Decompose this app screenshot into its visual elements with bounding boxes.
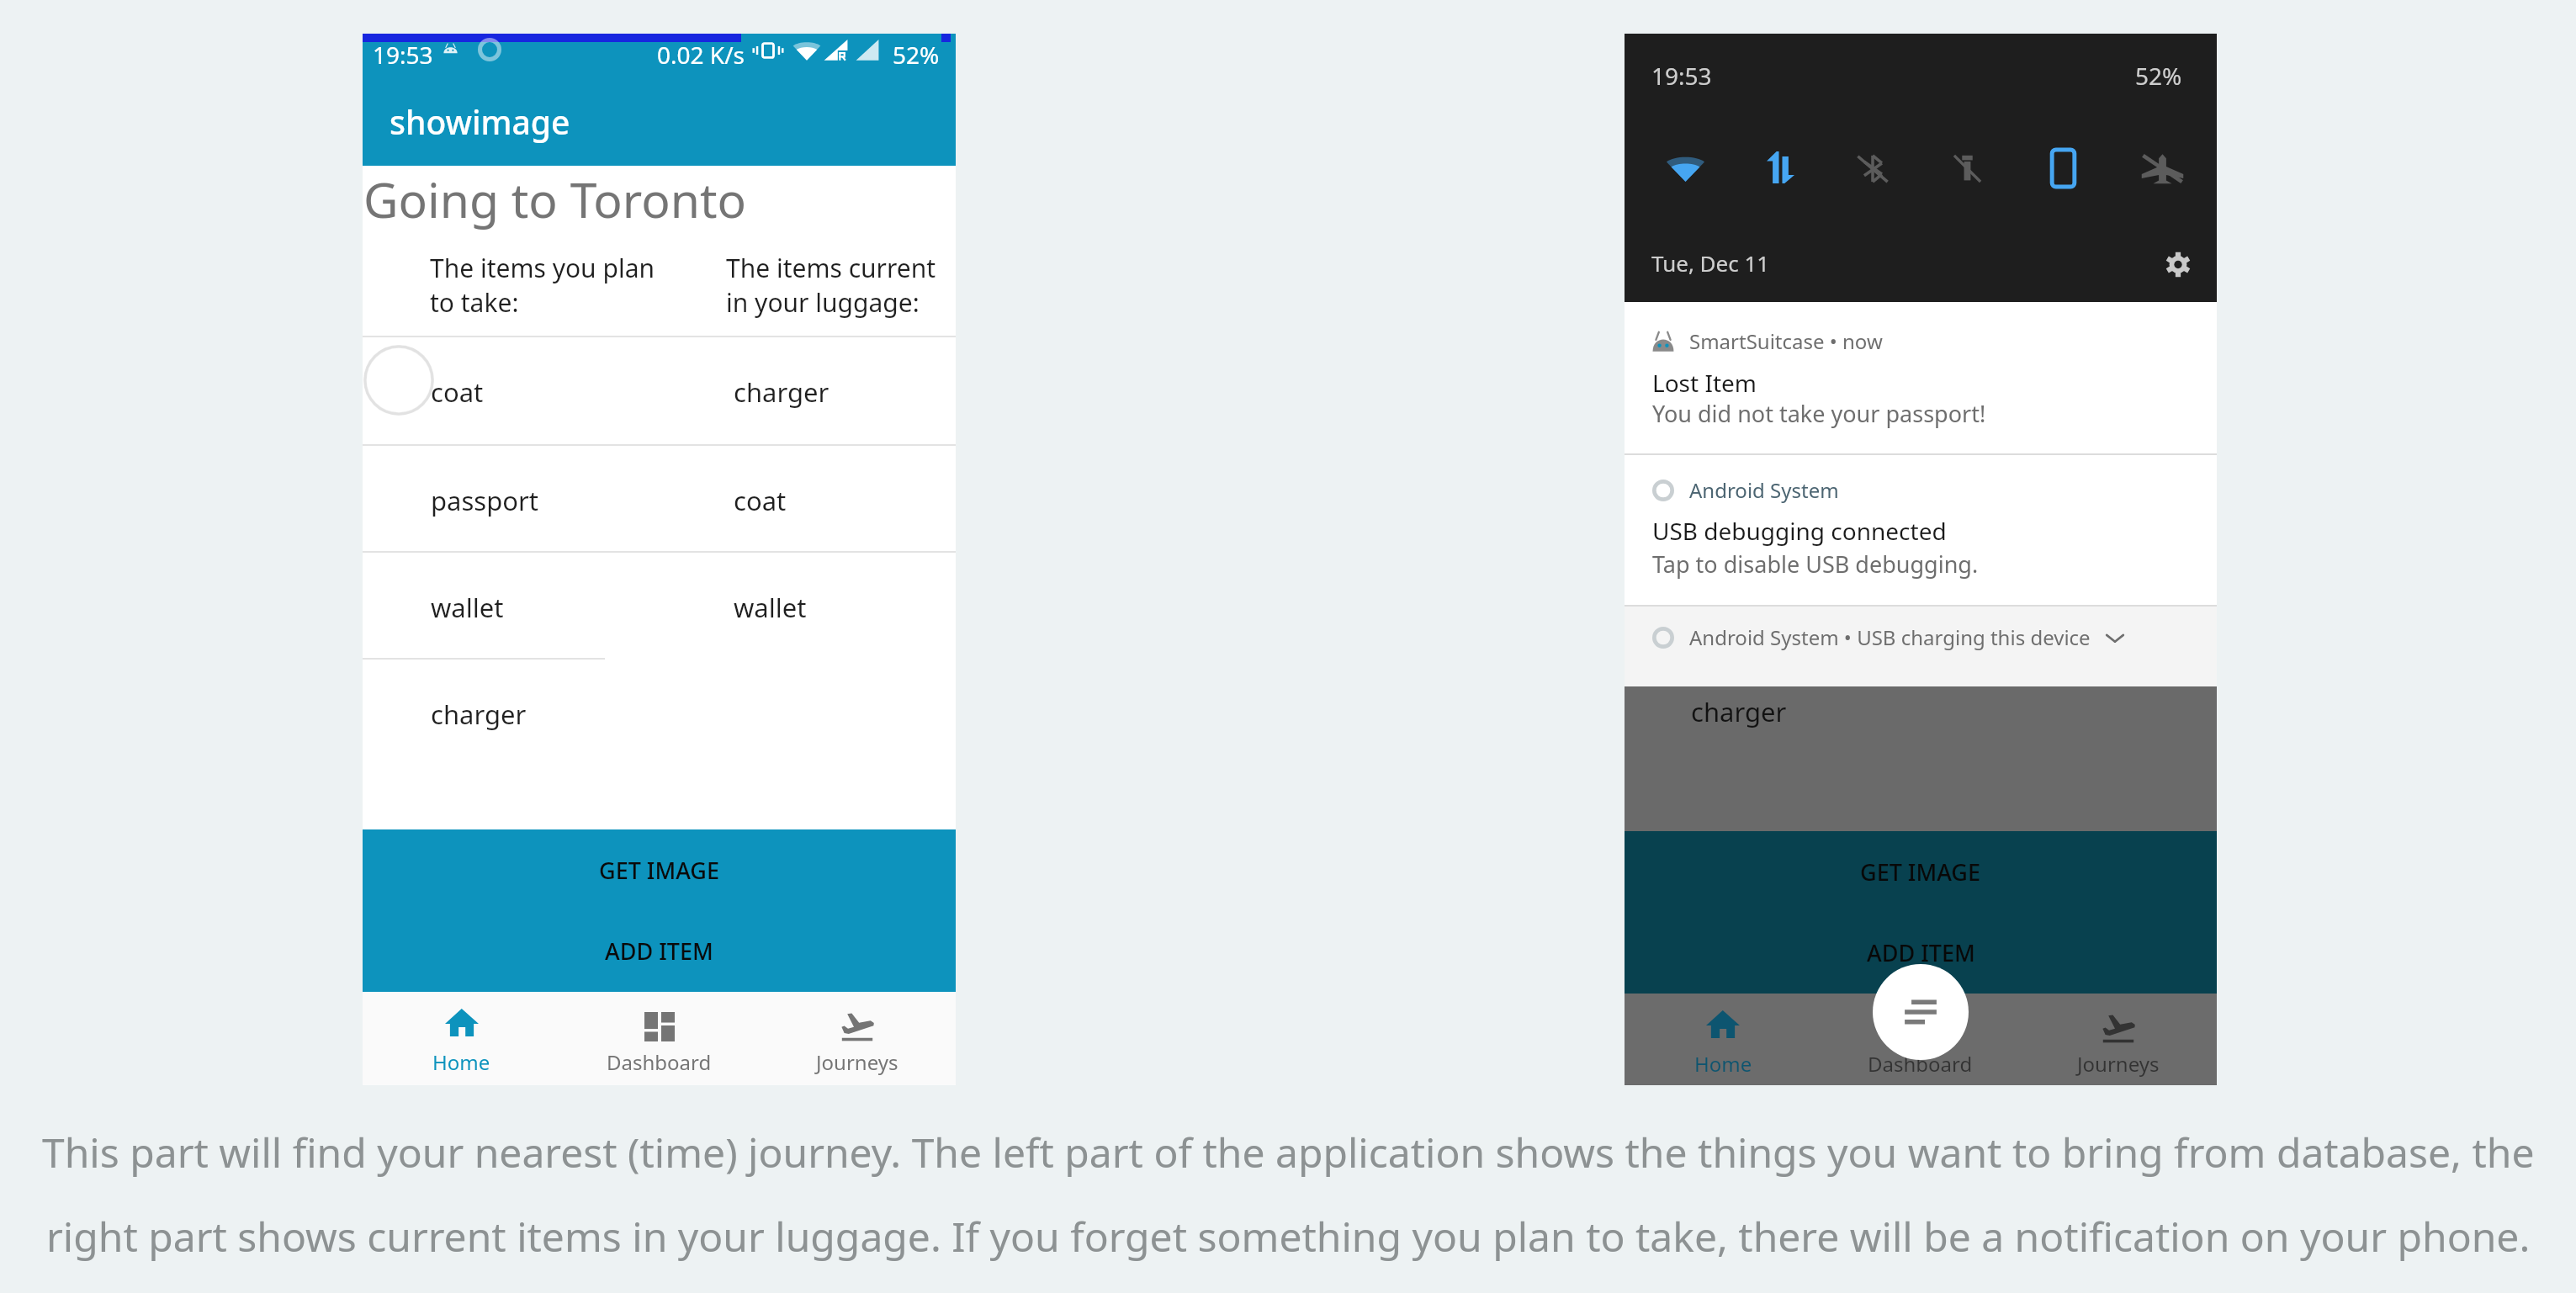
button[interactable]: charger xyxy=(363,658,659,765)
staticText: 19:53 xyxy=(1651,60,1712,92)
staticText: wallet xyxy=(734,590,807,625)
button[interactable]: Home xyxy=(363,992,560,1085)
staticText: GET IMAGE xyxy=(1860,856,1981,888)
staticText: 52% xyxy=(893,39,940,71)
staticText: You did not take your passport! xyxy=(1652,398,1986,429)
staticText: SmartSuitcase • now xyxy=(1689,327,1883,355)
button[interactable]: showimage xyxy=(363,76,956,166)
button[interactable]: Airplane mode xyxy=(2122,128,2202,209)
button[interactable]: Mobile data xyxy=(1740,127,1821,208)
staticText: Dashboard xyxy=(607,1048,712,1076)
staticText: Home xyxy=(432,1048,490,1076)
button[interactable]: ADD ITEM xyxy=(363,910,956,992)
button[interactable]: Journeys xyxy=(2019,994,2217,1085)
button[interactable]: Android System xyxy=(1625,455,2217,605)
button[interactable]: coat xyxy=(363,336,659,444)
staticText: USB debugging connected xyxy=(1652,515,1947,547)
staticText: Home xyxy=(1694,1050,1752,1078)
button[interactable]: coat xyxy=(665,444,962,551)
button[interactable]: wallet xyxy=(363,551,659,658)
button[interactable]: Flashlight xyxy=(1927,128,2007,209)
button[interactable]: Wi-Fi xyxy=(1645,128,1725,209)
staticText: GET IMAGE xyxy=(599,855,720,886)
button[interactable]: Dashboard xyxy=(1821,994,2019,1085)
staticText: Android System • USB charging this devic… xyxy=(1689,623,2091,651)
button[interactable]: ADD ITEM xyxy=(1625,912,2217,994)
staticText: Dashboard xyxy=(1868,1050,1973,1078)
staticText: 19:53 xyxy=(373,39,433,71)
staticText: 0.02 K/s xyxy=(657,39,745,71)
button[interactable]: passport xyxy=(363,444,659,551)
staticText: The items you plan to take: xyxy=(430,251,655,320)
staticText: right part shows current items in your l… xyxy=(46,1209,2531,1264)
staticText: charger xyxy=(431,697,527,732)
staticText: passport xyxy=(431,483,538,518)
staticText: coat xyxy=(431,374,484,410)
staticText: Android System xyxy=(1689,476,1839,504)
button[interactable]: Bluetooth xyxy=(1832,128,1913,209)
button[interactable]: GET IMAGE xyxy=(1625,831,2217,912)
button[interactable]: Journeys xyxy=(758,992,956,1085)
staticText: charger xyxy=(734,374,830,410)
staticText: Tap to disable USB debugging. xyxy=(1652,548,1979,580)
staticText: ADD ITEM xyxy=(605,935,713,967)
staticText: This part will find your nearest (time) … xyxy=(42,1125,2535,1179)
button[interactable]: Auto rotate xyxy=(2022,128,2103,209)
button[interactable]: SmartSuitcase • now xyxy=(1625,302,2217,453)
staticText: coat xyxy=(734,483,787,518)
staticText: Tue, Dec 11 xyxy=(1651,248,1770,278)
staticText: 52% xyxy=(2135,60,2182,92)
button[interactable]: GET IMAGE xyxy=(363,829,956,910)
button[interactable]: Android System • USB charging this devic… xyxy=(1625,607,2217,686)
staticText: charger xyxy=(1691,694,1787,729)
staticText: Going to Toronto xyxy=(363,167,747,232)
button[interactable]: Home xyxy=(1625,994,1821,1085)
button[interactable]: charger xyxy=(665,336,962,444)
button[interactable]: Dashboard xyxy=(560,992,758,1085)
button[interactable]: wallet xyxy=(665,551,962,658)
staticText: Journeys xyxy=(2077,1050,2160,1078)
button[interactable]: Menu xyxy=(1873,964,1969,1060)
staticText: ADD ITEM xyxy=(1867,937,1975,968)
button[interactable]: Settings xyxy=(2141,227,2215,301)
staticText: Lost Item xyxy=(1652,367,1757,399)
staticText: wallet xyxy=(431,590,504,625)
staticText: showimage xyxy=(390,99,570,144)
staticText: The items current in your luggage: xyxy=(726,251,936,320)
staticText: Journeys xyxy=(816,1048,898,1076)
